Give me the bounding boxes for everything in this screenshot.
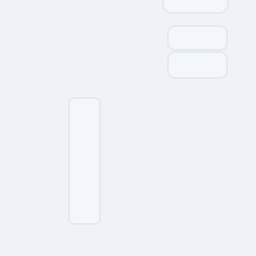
button[interactable]: Vertical control bbox=[69, 98, 100, 224]
button[interactable]: Third item bbox=[168, 52, 227, 78]
button[interactable]: Second item bbox=[168, 26, 227, 50]
button[interactable]: First item bbox=[163, 0, 228, 13]
